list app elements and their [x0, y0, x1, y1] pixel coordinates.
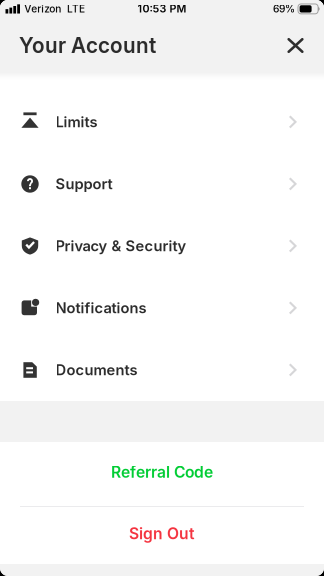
button[interactable]: Close — [278, 28, 312, 62]
button[interactable]: Documents — [0, 339, 324, 401]
staticText: Notifications — [56, 299, 147, 317]
button[interactable]: Support — [0, 153, 324, 215]
staticText: Documents — [56, 361, 138, 379]
staticText: Support — [56, 175, 113, 193]
button[interactable]: Limits — [0, 91, 324, 153]
button[interactable]: Notifications — [0, 277, 324, 339]
button[interactable]: Privacy & Security — [0, 215, 324, 277]
staticText: LTE — [67, 3, 85, 15]
button[interactable]: Sign Out — [0, 507, 324, 564]
staticText: 69% — [273, 3, 295, 15]
staticText: Verizon — [24, 3, 61, 15]
staticText: 10:53 PM — [137, 2, 186, 15]
button[interactable]: Referral Code — [0, 442, 324, 506]
staticText: Referral Code — [111, 463, 213, 481]
staticText: Privacy & Security — [56, 237, 187, 255]
staticText: Sign Out — [129, 524, 195, 543]
staticText: Limits — [56, 113, 98, 131]
staticText: Your Account — [19, 33, 156, 58]
